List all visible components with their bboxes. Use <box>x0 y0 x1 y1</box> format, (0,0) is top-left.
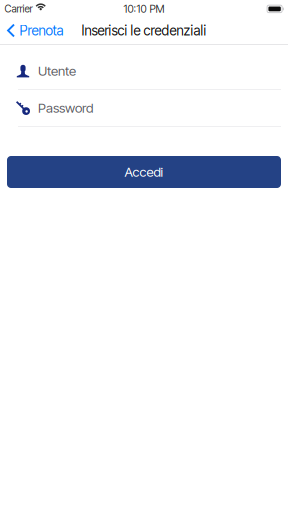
staticText: Accedi <box>124 164 163 180</box>
button[interactable]: Prenota <box>0 20 70 40</box>
staticText: Prenota <box>20 22 64 39</box>
staticText: Inserisci le credenziali <box>81 22 206 39</box>
staticText: Utente <box>38 63 76 79</box>
button[interactable]: Password <box>0 90 288 127</box>
button[interactable]: Accedi <box>7 156 281 188</box>
staticText: Carrier <box>4 3 32 15</box>
button[interactable]: Utente <box>0 53 288 90</box>
staticText: Password <box>38 100 93 116</box>
staticText: 10:10 PM <box>123 2 164 15</box>
